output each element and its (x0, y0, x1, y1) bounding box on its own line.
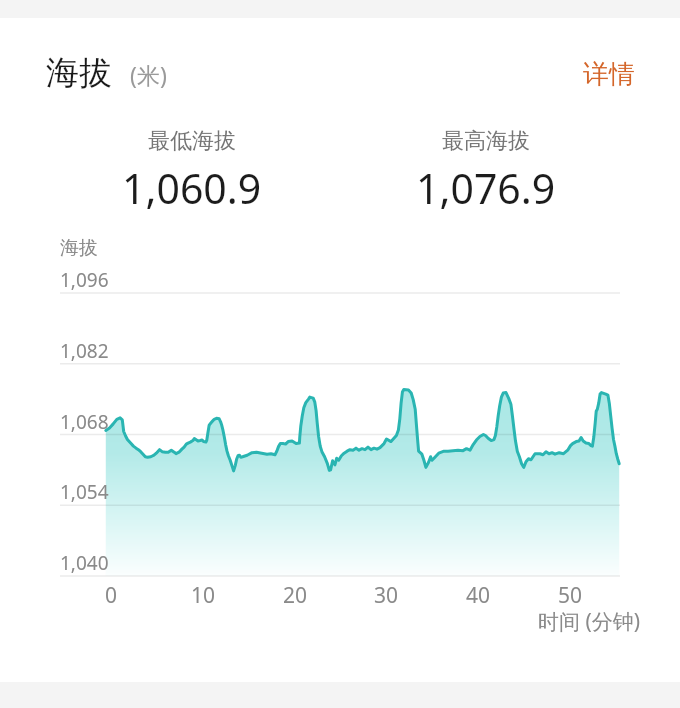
staticText: 1,082 (60, 338, 109, 364)
staticText: 1,054 (60, 479, 109, 505)
button[interactable]: 最高海拔 (366, 127, 606, 209)
staticText: 时间 (分钟) (538, 607, 641, 636)
button[interactable]: 详情 (568, 50, 650, 98)
staticText: 1,096 (60, 267, 109, 293)
staticText: 1,060.9 (122, 160, 262, 209)
staticText: 1,040 (60, 550, 109, 576)
staticText: 海拔 (46, 52, 112, 94)
staticText: 1,076.9 (416, 160, 556, 209)
staticText: 10 (178, 581, 228, 610)
staticText: 详情 (583, 58, 635, 91)
button[interactable]: 最低海拔 (72, 127, 312, 209)
staticText: 海拔 (60, 236, 98, 260)
staticText: 50 (545, 581, 595, 610)
staticText: 最高海拔 (442, 127, 530, 155)
staticText: 最低海拔 (148, 127, 236, 155)
staticText: 0 (86, 581, 136, 610)
staticText: 30 (361, 581, 411, 610)
staticText: (米) (130, 59, 167, 90)
staticText: 1,068 (60, 409, 109, 435)
staticText: 20 (270, 581, 320, 610)
staticText: 40 (453, 581, 503, 610)
